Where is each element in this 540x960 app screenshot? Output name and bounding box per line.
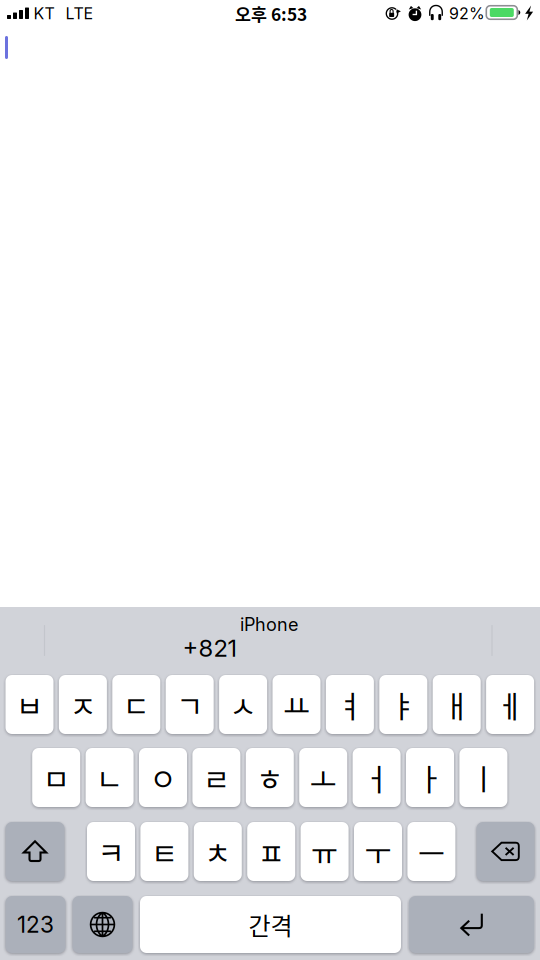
button[interactable]: iPhone: [169, 611, 369, 637]
staticText: ㅕ: [336, 683, 363, 726]
staticText: 123: [17, 911, 54, 938]
button[interactable]: ㅑ: [379, 675, 427, 734]
button[interactable]: ㅏ: [406, 748, 454, 807]
button[interactable]: 123: [5, 896, 65, 953]
button[interactable]: ㅈ: [59, 675, 107, 734]
staticText: LTE: [65, 4, 93, 23]
button[interactable]: ㄹ: [192, 748, 240, 807]
button[interactable]: ㄱ: [166, 675, 214, 734]
staticText: ㅐ: [443, 683, 470, 726]
staticText: ㄹ: [203, 756, 230, 799]
staticText: ㅎ: [256, 756, 283, 799]
staticText: ㅌ: [151, 830, 178, 873]
staticText: iPhone: [240, 614, 298, 635]
button[interactable]: ㅊ: [194, 822, 242, 881]
button[interactable]: ㅓ: [353, 748, 401, 807]
button[interactable]: ㅐ: [433, 675, 481, 734]
button[interactable]: Delete: [476, 822, 534, 881]
button[interactable]: ㅔ: [486, 675, 534, 734]
staticText: ㅓ: [363, 756, 390, 799]
staticText: ㅊ: [204, 830, 231, 873]
button[interactable]: ㅌ: [140, 822, 188, 881]
staticText: ㅗ: [310, 756, 337, 799]
button[interactable]: Return: [409, 896, 534, 953]
button[interactable]: ㅣ: [459, 748, 507, 807]
button[interactable]: ㅂ: [5, 675, 53, 734]
button[interactable]: ㅛ: [272, 675, 320, 734]
staticText: ㄷ: [123, 683, 150, 726]
button[interactable]: ㅗ: [299, 748, 347, 807]
button[interactable]: ㄷ: [112, 675, 160, 734]
staticText: ㅛ: [283, 683, 310, 726]
staticText: ㅏ: [416, 756, 443, 799]
staticText: ㅅ: [230, 683, 257, 726]
button[interactable]: ㅋ: [87, 822, 135, 881]
staticText: ㅑ: [390, 683, 417, 726]
staticText: ㅜ: [364, 830, 391, 873]
button[interactable]: ㅎ: [246, 748, 294, 807]
button[interactable]: Shift: [5, 822, 64, 881]
staticText: ㅁ: [43, 756, 70, 799]
button[interactable]: ㄴ: [86, 748, 134, 807]
button[interactable]: ㅜ: [354, 822, 402, 881]
staticText: 간격: [248, 907, 292, 942]
staticText: ㄴ: [96, 756, 123, 799]
staticText: +821: [182, 633, 237, 662]
button[interactable]: ㅠ: [301, 822, 349, 881]
staticText: ㅡ: [418, 830, 445, 873]
button[interactable]: ㅅ: [219, 675, 267, 734]
button[interactable]: Next keyboard: [72, 896, 132, 953]
button[interactable]: ㅇ: [139, 748, 187, 807]
staticText: ㅍ: [258, 830, 285, 873]
staticText: ㅋ: [97, 830, 124, 873]
staticText: ㅇ: [149, 756, 176, 799]
button[interactable]: 간격: [140, 896, 401, 953]
staticText: ㄱ: [176, 683, 203, 726]
staticText: ㅂ: [16, 683, 43, 726]
staticText: 오후 6:53: [235, 1, 307, 26]
staticText: ㅈ: [69, 683, 96, 726]
staticText: ㅔ: [497, 683, 524, 726]
staticText: ㅠ: [311, 830, 338, 873]
staticText: 92%: [449, 4, 485, 23]
button[interactable]: ㅍ: [247, 822, 295, 881]
staticText: KT: [33, 4, 54, 23]
button[interactable]: ㅁ: [32, 748, 80, 807]
button[interactable]: ㅡ: [407, 822, 455, 881]
button[interactable]: ㅕ: [326, 675, 374, 734]
staticText: ㅣ: [470, 756, 497, 799]
